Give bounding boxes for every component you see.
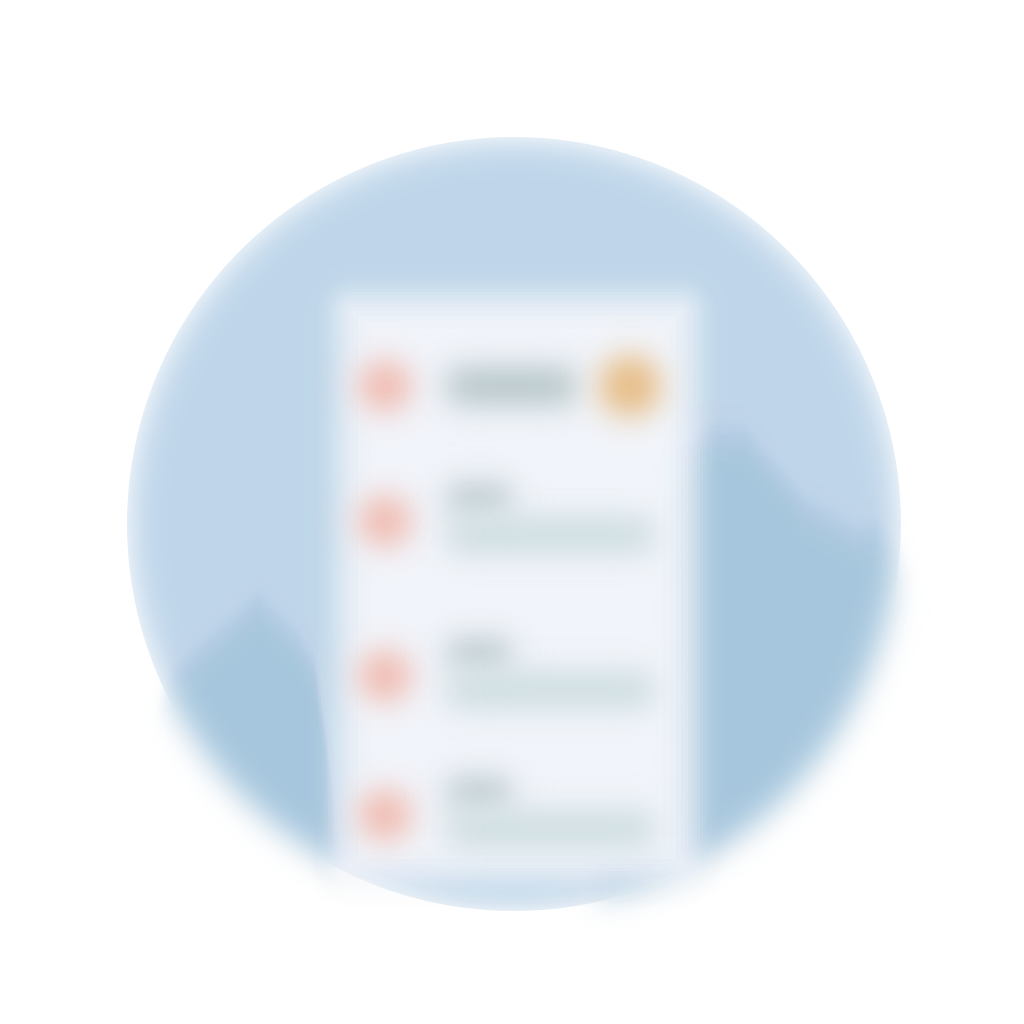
button[interactable] [0,0,1024,1024]
button[interactable] [0,0,1024,1024]
button[interactable] [0,0,1024,1024]
button[interactable] [0,0,1024,1024]
